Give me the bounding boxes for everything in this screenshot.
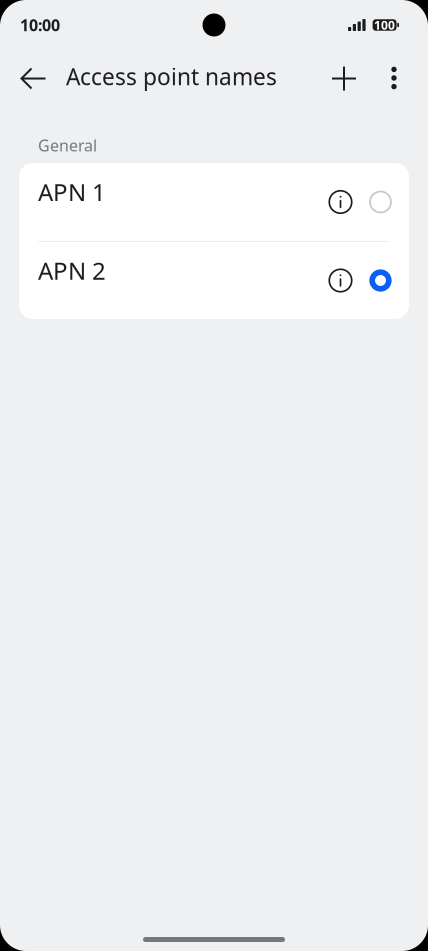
button[interactable]: Add APN <box>319 50 369 106</box>
staticText: 10:00 <box>20 14 60 36</box>
button[interactable]: Back <box>6 50 60 106</box>
staticText: Access point names <box>66 61 277 91</box>
staticText: APN 2 <box>38 255 106 286</box>
button[interactable]: APN details <box>320 254 360 306</box>
button[interactable]: APN 2 <box>19 242 409 319</box>
button[interactable]: Select APN <box>360 176 400 228</box>
staticText: APN 1 <box>38 176 106 208</box>
staticText: 100 <box>374 17 395 33</box>
button[interactable]: APN details <box>320 176 360 228</box>
button[interactable]: Selected <box>360 254 400 306</box>
staticText: General <box>38 135 97 156</box>
button[interactable]: APN 1 <box>19 163 409 241</box>
button[interactable]: More options <box>369 49 419 107</box>
